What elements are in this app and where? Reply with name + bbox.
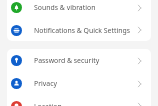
staticText: Sounds & vibration [34, 3, 96, 12]
staticText: Privacy [34, 79, 57, 88]
staticText: Notifications & Quick Settings [34, 26, 131, 35]
button[interactable]: Sounds & vibration [7, 0, 151, 19]
button[interactable]: Location [7, 95, 151, 106]
staticText: Password & security [34, 56, 100, 65]
button[interactable]: Password & security [7, 49, 151, 72]
staticText: Location [34, 102, 62, 106]
button[interactable]: Privacy [7, 72, 151, 95]
button[interactable]: Notifications & Quick Settings [7, 19, 151, 41]
